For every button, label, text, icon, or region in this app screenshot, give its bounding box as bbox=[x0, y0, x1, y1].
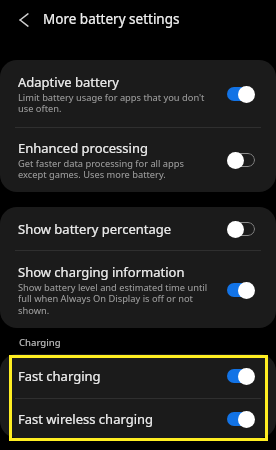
button[interactable]: Enhanced processing bbox=[0, 128, 276, 192]
button[interactable]: Back bbox=[9, 5, 38, 34]
staticText: Enhanced processing bbox=[18, 139, 148, 157]
staticText: Get faster data processing for all apps … bbox=[18, 157, 208, 181]
staticText: More battery settings bbox=[43, 10, 180, 28]
button[interactable]: Show charging information bbox=[0, 251, 276, 328]
staticText: Adaptive battery bbox=[18, 73, 119, 91]
staticText: Fast charging bbox=[18, 367, 101, 385]
staticText: Limit battery usage for apps that you do… bbox=[18, 91, 208, 115]
button[interactable]: Fast charging bbox=[0, 354, 276, 398]
button[interactable]: Adaptive battery bbox=[0, 60, 276, 127]
button[interactable]: Show battery percentage bbox=[0, 207, 276, 250]
staticText: Show battery level and estimated time un… bbox=[18, 281, 208, 317]
staticText: Fast wireless charging bbox=[18, 410, 154, 428]
button[interactable]: Fast wireless charging bbox=[0, 399, 276, 438]
staticText: Show battery percentage bbox=[18, 220, 172, 238]
staticText: Charging bbox=[19, 336, 61, 349]
staticText: Show charging information bbox=[18, 263, 185, 281]
